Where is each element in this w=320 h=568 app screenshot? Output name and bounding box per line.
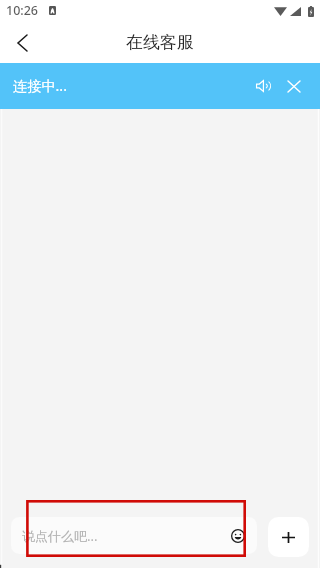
staticText: 说点什么吧... [22, 527, 98, 545]
button[interactable]: Back [1, 22, 43, 63]
button[interactable]: More [268, 517, 309, 557]
button[interactable]: 说点什么吧... [11, 517, 257, 554]
button[interactable]: Sound [248, 71, 278, 101]
staticText: 在线客服 [126, 32, 194, 53]
button[interactable]: Emoji [225, 523, 251, 549]
staticText: 连接中... [13, 76, 67, 95]
staticText: 10:26 [6, 2, 39, 19]
button[interactable]: Close [279, 71, 309, 101]
